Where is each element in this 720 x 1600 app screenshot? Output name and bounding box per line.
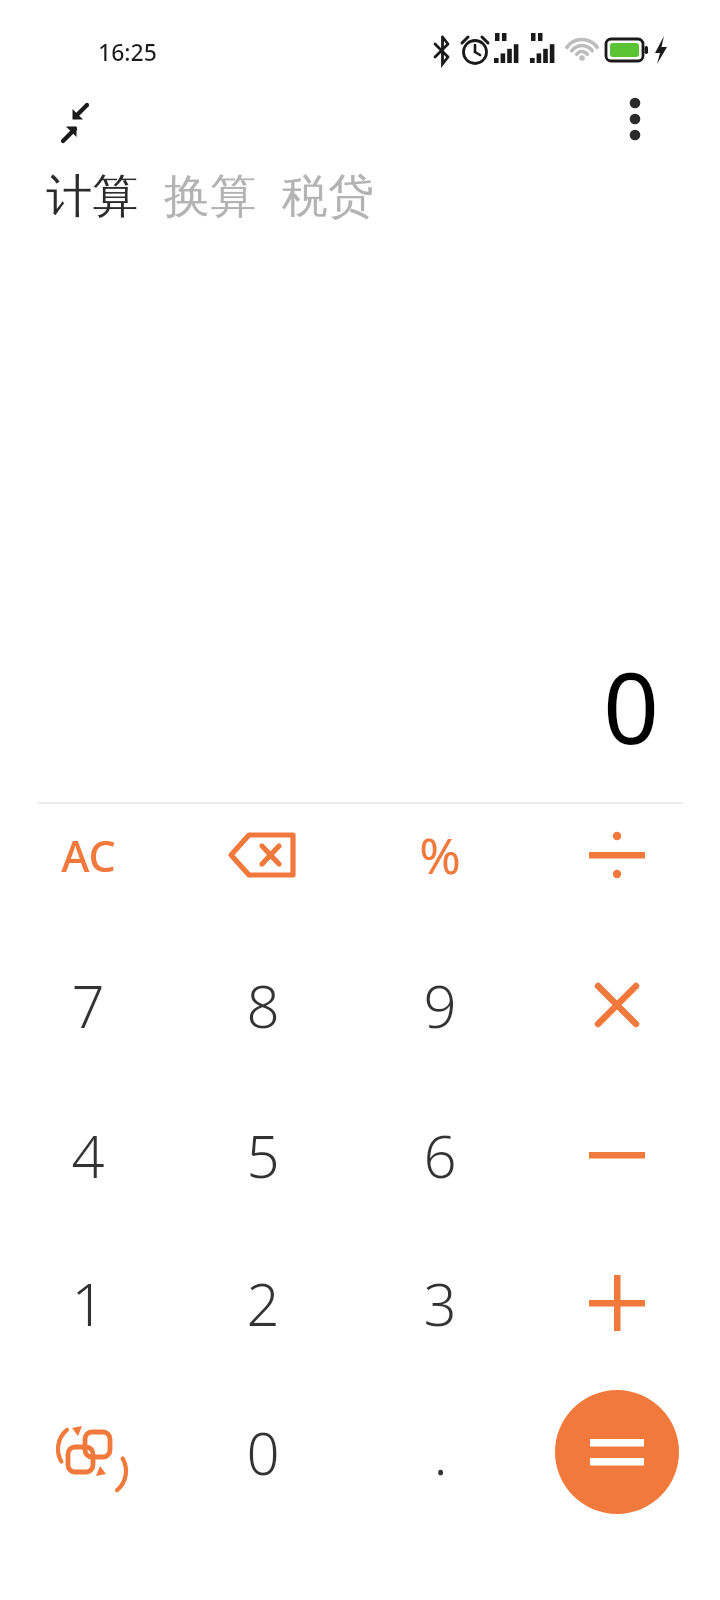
button[interactable]: Equals <box>555 1390 679 1514</box>
staticText: 3 <box>423 1264 457 1343</box>
staticText: 7 <box>71 966 105 1045</box>
button[interactable]: 4 <box>6 1081 170 1229</box>
button[interactable]: Multiply <box>535 931 699 1079</box>
staticText: 1 <box>71 1264 105 1343</box>
staticText: 换算 <box>164 168 256 226</box>
staticText: AC <box>61 826 116 885</box>
button[interactable]: 计算 <box>46 168 138 226</box>
staticText: 9 <box>423 966 457 1045</box>
staticText: 6 <box>423 1116 457 1195</box>
staticText: 0 <box>603 639 660 772</box>
staticText: 5 <box>246 1116 280 1195</box>
button[interactable]: Backspace <box>181 781 345 929</box>
button[interactable]: 5 <box>181 1081 345 1229</box>
button[interactable]: 3 <box>358 1229 522 1377</box>
button[interactable]: 税贷 <box>282 168 374 226</box>
staticText: % <box>419 821 461 889</box>
button[interactable]: 1 <box>6 1229 170 1377</box>
button[interactable]: 9 <box>358 931 522 1079</box>
button[interactable]: AC <box>6 781 170 929</box>
button[interactable]: Unit converter <box>6 1378 170 1526</box>
staticText: 8 <box>246 966 280 1045</box>
button[interactable]: Minus <box>535 1081 699 1229</box>
button[interactable]: Plus <box>535 1229 699 1377</box>
staticText: 16:25 <box>98 36 157 67</box>
button[interactable]: Collapse <box>38 86 110 158</box>
staticText: 0 <box>246 1413 280 1492</box>
button[interactable]: 8 <box>181 931 345 1079</box>
button[interactable]: 6 <box>358 1081 522 1229</box>
button[interactable]: Divide <box>535 781 699 929</box>
button[interactable]: More options <box>600 84 670 154</box>
staticText: 税贷 <box>282 168 374 226</box>
button[interactable]: 0 <box>181 1378 345 1526</box>
button[interactable]: 换算 <box>164 168 256 226</box>
staticText: 计算 <box>46 168 138 226</box>
staticText: 4 <box>71 1116 105 1195</box>
button[interactable]: 7 <box>6 931 170 1079</box>
button[interactable]: 2 <box>181 1229 345 1377</box>
button[interactable]: . <box>358 1378 522 1526</box>
staticText: 2 <box>246 1264 280 1343</box>
button[interactable]: % <box>358 781 522 929</box>
staticText: . <box>433 1413 448 1492</box>
